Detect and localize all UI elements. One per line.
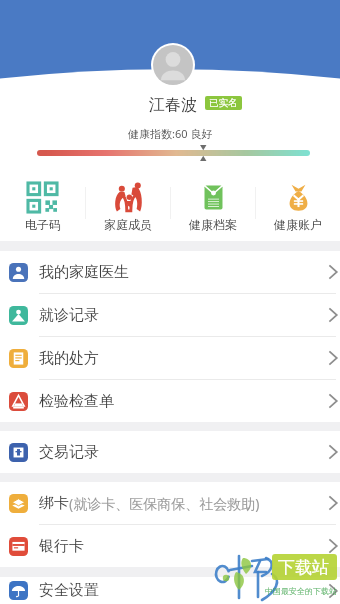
button[interactable]: 已实名 xyxy=(209,97,238,109)
staticText: 检验检查单 xyxy=(39,392,114,411)
button[interactable]: 电子码 xyxy=(0,165,85,241)
staticText: 我的家庭医生 xyxy=(39,263,129,282)
staticText: 已实名 xyxy=(209,97,238,109)
staticText: 健康档案 xyxy=(189,217,237,232)
staticText: 健康账户 xyxy=(274,217,322,232)
staticText: 我的处方 xyxy=(39,349,99,368)
button[interactable]: 我的家庭医生 xyxy=(0,251,340,293)
staticText: 江春波 xyxy=(149,95,197,115)
button[interactable]: 就诊记录 xyxy=(0,294,340,336)
staticText: 中国最安全的下载站 xyxy=(265,586,337,596)
other: Profile avatar xyxy=(153,45,193,85)
staticText: 电子码 xyxy=(25,217,61,232)
button[interactable]: 银行卡 xyxy=(0,525,340,567)
button[interactable]: 家庭成员 xyxy=(86,165,170,241)
staticText: (就诊卡、医保商保、社会救助) xyxy=(69,494,260,513)
staticText: 银行卡 xyxy=(39,537,84,556)
staticText: 安全设置 xyxy=(39,581,99,600)
button[interactable]: 交易记录 xyxy=(0,431,340,473)
button[interactable]: 检验检查单 xyxy=(0,380,340,422)
staticText: 交易记录 xyxy=(39,443,99,462)
staticText: 就诊记录 xyxy=(39,306,99,325)
button[interactable]: 安全设置 xyxy=(0,577,340,604)
button[interactable]: 健康档案 xyxy=(171,165,255,241)
staticText: 下载站 xyxy=(278,557,329,578)
button[interactable]: 绑卡 xyxy=(0,482,340,524)
staticText: 家庭成员 xyxy=(104,217,152,232)
button[interactable]: 健康账户 xyxy=(256,165,340,241)
staticText: 绑卡 xyxy=(39,494,69,513)
button[interactable]: 我的处方 xyxy=(0,337,340,379)
staticText: 健康指数:60 良好 xyxy=(128,126,213,141)
